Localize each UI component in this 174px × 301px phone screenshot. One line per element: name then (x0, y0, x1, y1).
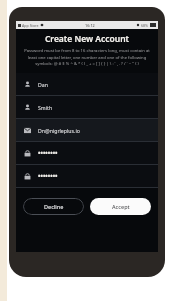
other: Password (24, 173, 31, 180)
staticText: •••••••• (38, 149, 58, 158)
button[interactable]: Name (16, 73, 158, 95)
staticText: Decline (44, 203, 64, 210)
staticText: 16:12 (85, 23, 95, 28)
staticText: Accept (112, 203, 130, 210)
button[interactable]: Password (16, 142, 158, 164)
staticText: Password must be from 8 to 16 characters… (22, 48, 152, 66)
other: Name (24, 104, 31, 111)
other: Password (24, 150, 31, 157)
button[interactable]: Name (16, 96, 158, 118)
button[interactable]: Password (16, 165, 158, 187)
staticText: Dn@nigrleplus.io (38, 127, 80, 134)
staticText: Smith (38, 104, 53, 111)
button[interactable]: Accept (90, 198, 151, 215)
button[interactable]: Decline (23, 198, 84, 215)
staticText: App Store (22, 23, 39, 28)
staticText: Create New Account (16, 33, 158, 45)
other: Email (24, 127, 31, 134)
staticText: •••••••• (38, 172, 58, 181)
staticText: Dan (38, 81, 48, 88)
button[interactable]: Email (16, 119, 158, 141)
staticText: 68% (141, 23, 149, 28)
other: Name (24, 81, 31, 88)
